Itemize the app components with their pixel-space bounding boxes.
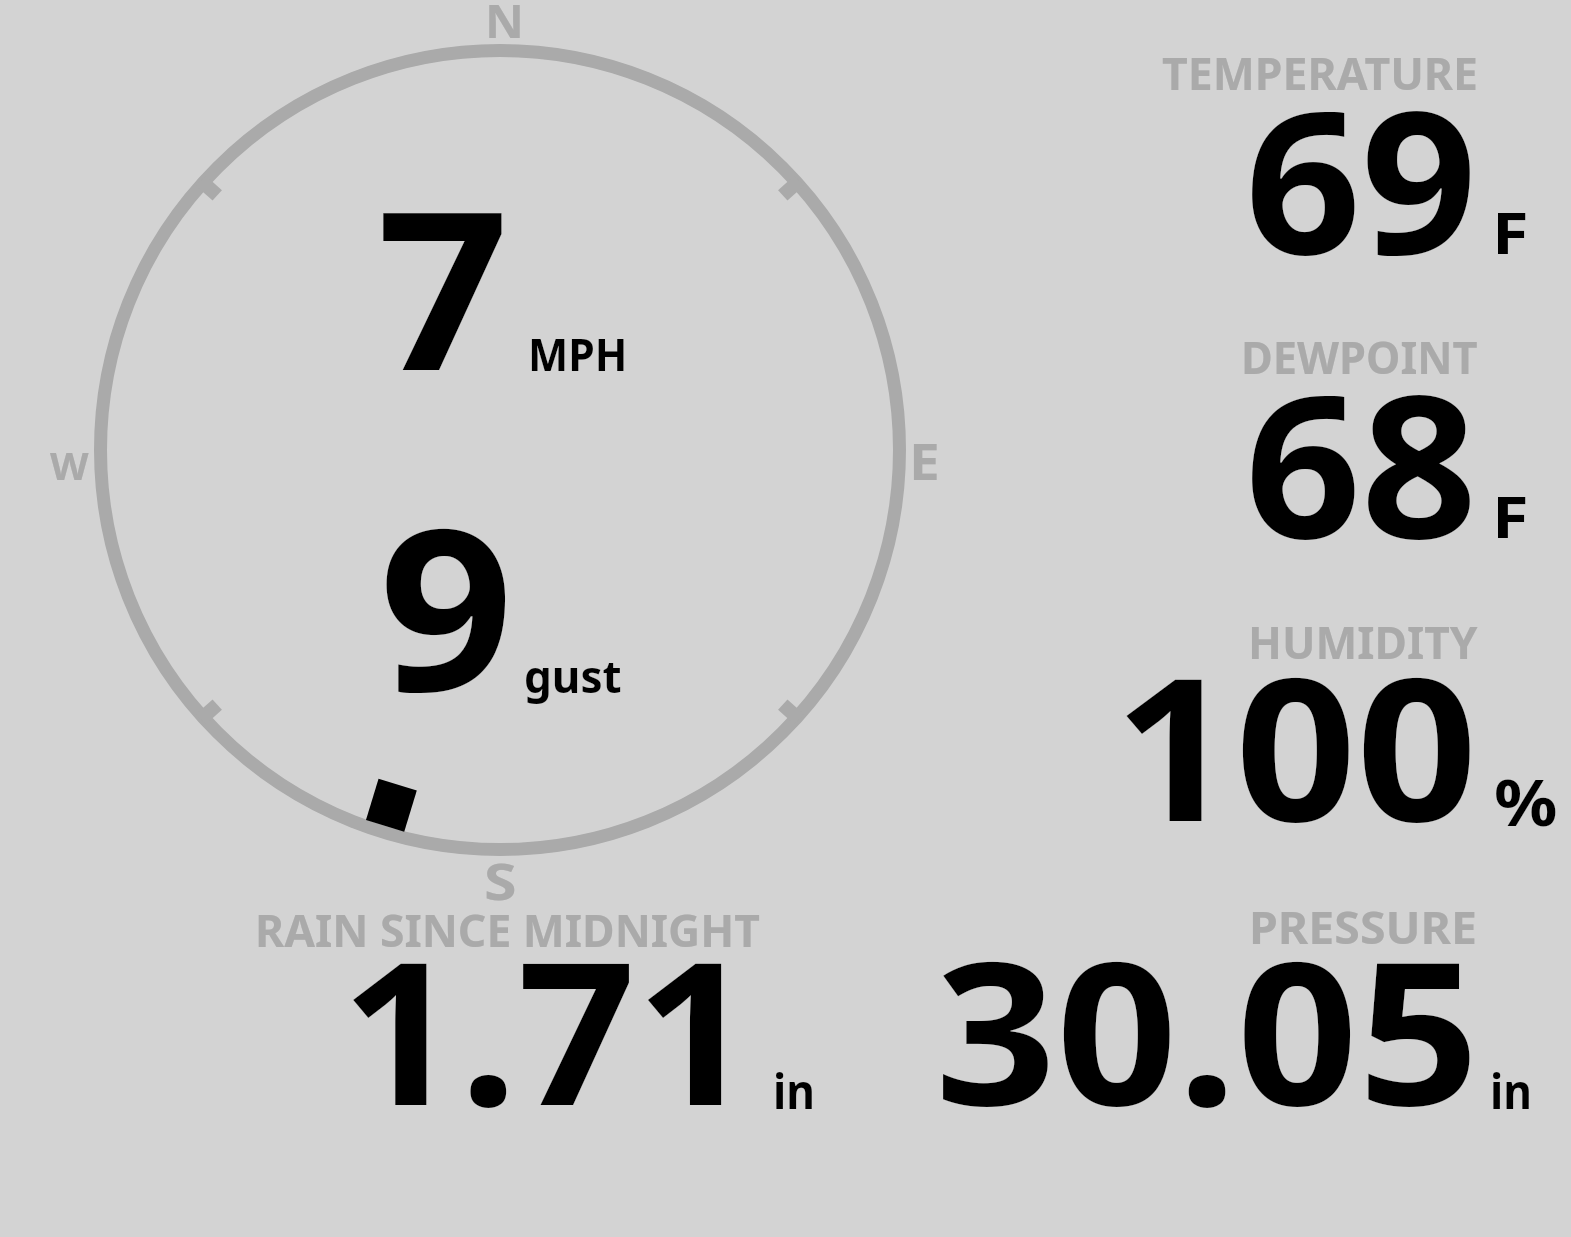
- staticText: W: [50, 439, 89, 491]
- button[interactable]: Humidity 100 percent: [1100, 588, 1571, 852]
- staticText: E: [909, 427, 940, 495]
- staticText: MPH: [528, 323, 627, 384]
- staticText: 30.05: [935, 894, 1480, 1162]
- button[interactable]: Dewpoint 68 degrees Fahrenheit: [1100, 304, 1571, 568]
- staticText: 100: [1114, 610, 1478, 878]
- staticText: in: [773, 1058, 815, 1123]
- staticText: 7: [377, 135, 509, 435]
- staticText: S: [484, 845, 518, 914]
- staticText: RAIN SINCE MIDNIGHT: [255, 899, 761, 960]
- staticText: in: [1490, 1058, 1532, 1123]
- staticText: 1.71: [341, 894, 755, 1162]
- staticText: %: [1494, 758, 1558, 845]
- staticText: DEWPOINT: [1241, 326, 1478, 387]
- staticText: N: [485, 0, 525, 52]
- staticText: 9: [379, 452, 514, 757]
- staticText: HUMIDITY: [1248, 611, 1477, 672]
- staticText: F: [1492, 476, 1529, 555]
- button[interactable]: Temperature 69 degrees Fahrenheit: [1100, 20, 1571, 284]
- staticText: TEMPERATURE: [1162, 42, 1478, 103]
- staticText: PRESSURE: [1249, 896, 1477, 957]
- staticText: 69: [1245, 43, 1478, 311]
- staticText: 68: [1245, 327, 1478, 595]
- button[interactable]: Pressure 30.05 inches of mercury: [880, 895, 1500, 1125]
- button[interactable]: Wind 7 miles per hour, gusting 9, out of…: [94, 0, 906, 900]
- staticText: gust: [524, 645, 622, 706]
- staticText: F: [1492, 192, 1529, 271]
- button[interactable]: Rain since midnight 1.71 inches: [240, 895, 840, 1125]
